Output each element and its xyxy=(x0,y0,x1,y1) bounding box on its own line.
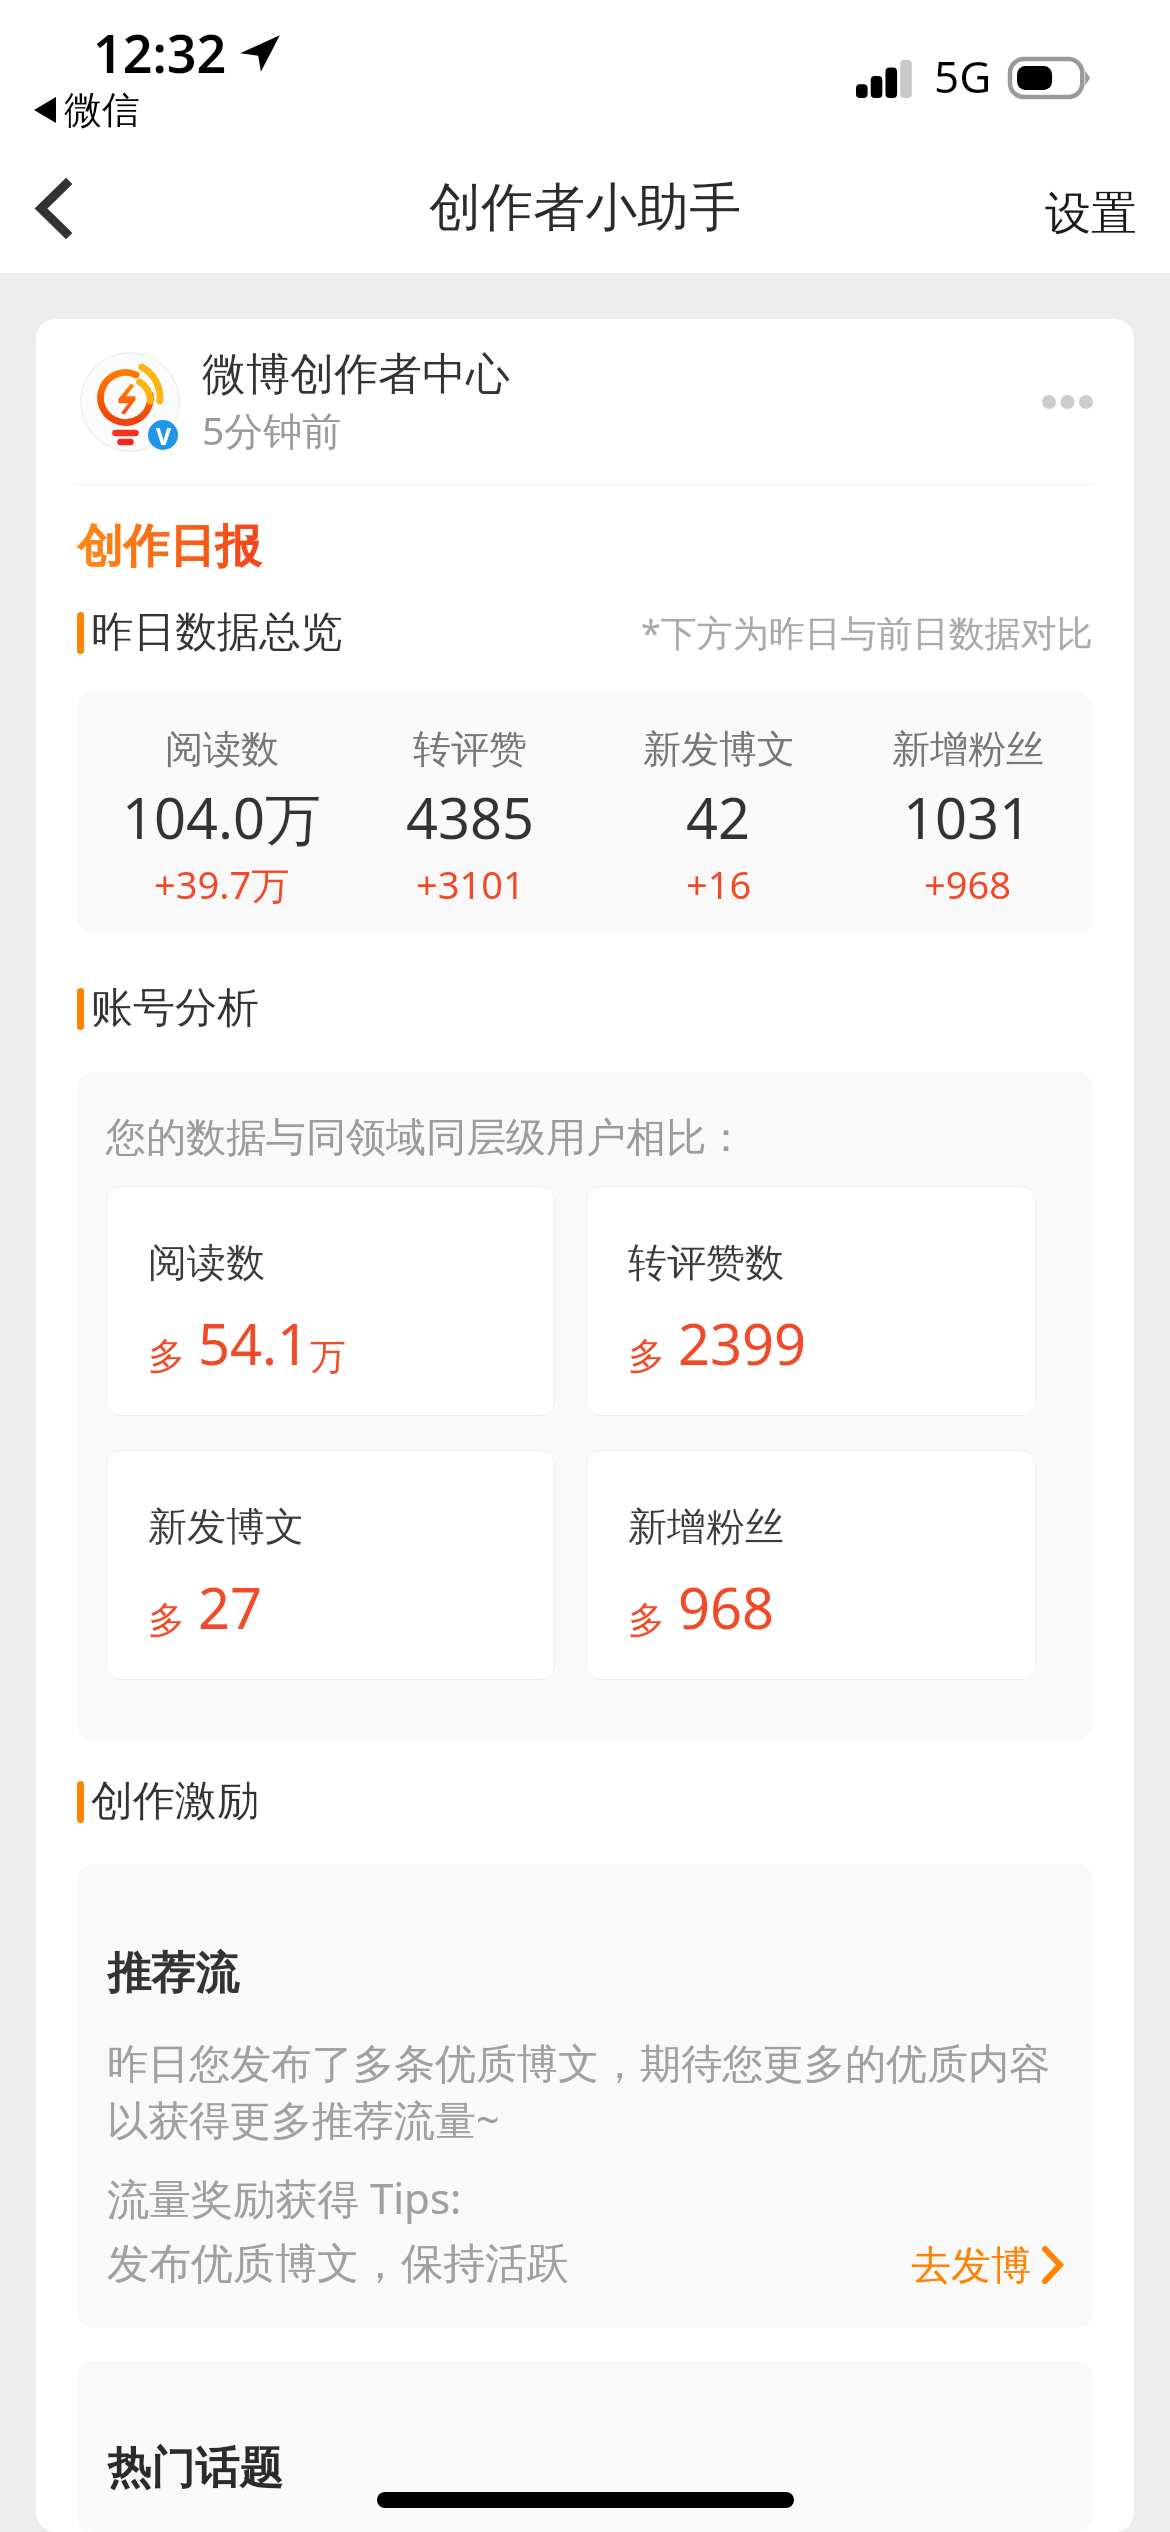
staticText: 创作日报 xyxy=(77,518,261,576)
staticText: 微博创作者中心 xyxy=(202,347,510,402)
staticText: 新增粉丝 xyxy=(628,1502,784,1551)
staticText: V xyxy=(156,420,171,450)
staticText: 万 xyxy=(310,1334,346,1379)
button[interactable]: 阅读数 xyxy=(106,1186,555,1416)
staticText: *下方为昨日与前日数据对比 xyxy=(641,608,1093,657)
button[interactable]: 转评赞数 xyxy=(586,1186,1036,1416)
staticText: 微信 xyxy=(64,86,140,134)
button[interactable]: 新发博文 xyxy=(594,725,843,910)
staticText: 设置 xyxy=(1045,185,1137,243)
staticText: 阅读数 xyxy=(148,1238,265,1287)
staticText: 42 xyxy=(686,779,751,855)
staticText: 昨日您发布了多条优质博文，期待您更多的优质内容， xyxy=(107,2039,1063,2091)
staticText: 以获得更多推荐流量~ xyxy=(107,2091,500,2147)
staticText: 4385 xyxy=(406,779,535,855)
staticText: 去发博 xyxy=(911,2240,1031,2290)
staticText: 创作者小助手 xyxy=(429,175,741,241)
staticText: 推荐流 xyxy=(107,1946,239,2001)
staticText: 发布优质博文，保持活跃 xyxy=(107,2238,569,2291)
button[interactable]: 去发博 xyxy=(911,2240,1063,2290)
staticText: 转评赞 xyxy=(413,725,527,773)
staticText: 多 xyxy=(148,1597,185,1644)
staticText: 热门话题 xyxy=(107,2441,283,2496)
button[interactable]: 新增粉丝 xyxy=(586,1450,1036,1680)
staticText: 27 xyxy=(198,1569,263,1645)
staticText: 12:32 xyxy=(93,17,227,88)
button[interactable]: 新发博文 xyxy=(106,1450,555,1680)
staticText: 5G xyxy=(934,46,992,106)
staticText: 流量奖励获得 Tips: xyxy=(107,2169,462,2226)
staticText: 创作激励 xyxy=(91,1775,259,1828)
staticText: 多 xyxy=(148,1333,185,1380)
staticText: 多 xyxy=(628,1333,665,1380)
button[interactable]: Back xyxy=(10,165,96,251)
button[interactable]: 新增粉丝 xyxy=(843,725,1092,910)
staticText: 转评赞数 xyxy=(628,1238,784,1287)
staticText: 1031 xyxy=(903,779,1032,855)
staticText: 2399 xyxy=(678,1305,807,1381)
staticText: 5分钟前 xyxy=(202,403,342,456)
button[interactable]: V xyxy=(36,319,1134,484)
staticText: 昨日数据总览 xyxy=(91,606,343,659)
staticText: 阅读数 xyxy=(165,725,279,773)
staticText: 104.0万 xyxy=(122,779,322,855)
staticText: 新发博文 xyxy=(148,1502,304,1551)
staticText: +16 xyxy=(686,858,752,910)
staticText: 新发博文 xyxy=(643,725,795,773)
staticText: 新增粉丝 xyxy=(892,725,1044,773)
staticText: 54.1 xyxy=(198,1305,310,1381)
button[interactable]: 设置 xyxy=(1011,169,1170,255)
staticText: 账号分析 xyxy=(91,982,259,1035)
staticText: +3101 xyxy=(416,858,525,910)
staticText: +39.7万 xyxy=(154,858,290,910)
button[interactable]: 转评赞 xyxy=(346,725,594,910)
staticText: 您的数据与同领域同层级用户相比： xyxy=(106,1112,746,1162)
button[interactable]: 阅读数 xyxy=(98,725,346,910)
staticText: 多 xyxy=(628,1597,665,1644)
button[interactable]: More options xyxy=(1010,377,1093,427)
staticText: +968 xyxy=(924,858,1011,910)
staticText: 968 xyxy=(678,1569,775,1645)
